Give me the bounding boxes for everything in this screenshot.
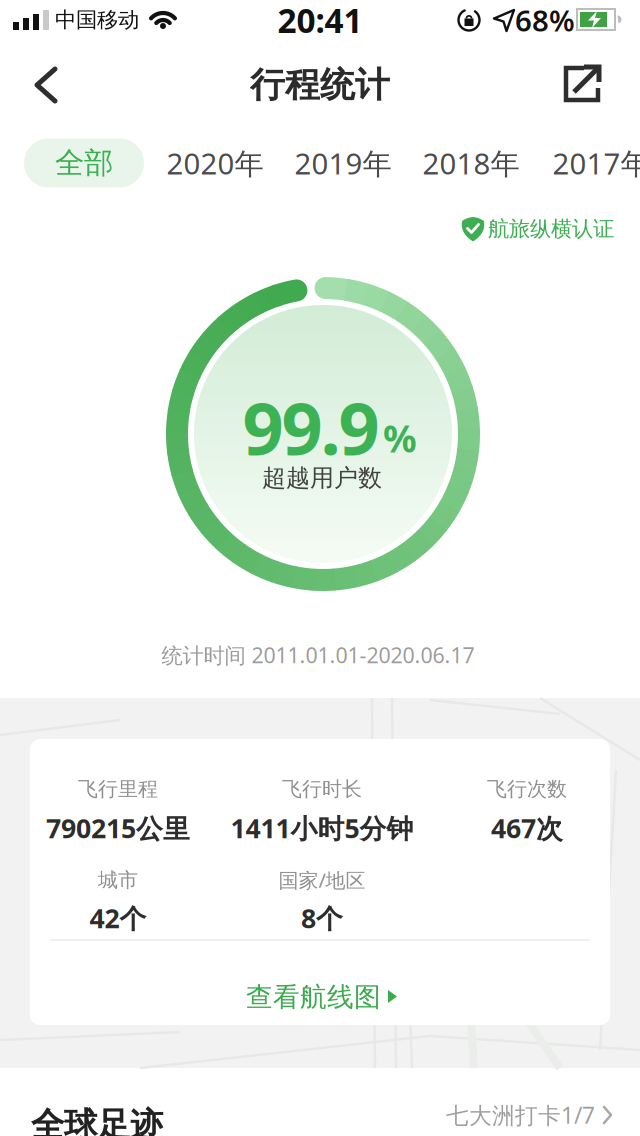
- staticText: 行程统计: [250, 64, 390, 106]
- staticText: 全部: [55, 145, 113, 181]
- staticText: 中国移动: [55, 7, 139, 33]
- staticText: 七大洲打卡1/7: [446, 1100, 595, 1130]
- staticText: 1411小时5分钟: [230, 810, 413, 846]
- staticText: 航旅纵横认证: [488, 216, 614, 242]
- staticText: 8个: [301, 900, 343, 936]
- staticText: 2018年: [422, 143, 519, 182]
- staticText: 飞行次数: [487, 777, 567, 801]
- staticText: 城市: [98, 868, 138, 892]
- staticText: 统计时间 2011.01.01-2020.06.17: [161, 641, 474, 669]
- staticText: 飞行里程: [78, 777, 158, 801]
- button[interactable]: 2020年: [166, 143, 263, 182]
- staticText: 42个: [89, 900, 146, 936]
- staticText: 查看航线图: [246, 981, 381, 1013]
- staticText: 全球足迹: [31, 1104, 163, 1136]
- staticText: %: [383, 413, 417, 463]
- staticText: 超越用户数: [262, 463, 382, 493]
- button[interactable]: 七大洲打卡1/7: [446, 1100, 614, 1130]
- button[interactable]: 查看航线图: [246, 981, 398, 1013]
- staticText: 68%: [515, 0, 575, 39]
- staticText: 2017年: [552, 143, 640, 182]
- staticText: 99.9: [242, 379, 379, 475]
- staticText: 467次: [491, 810, 563, 846]
- staticText: 飞行时长: [282, 777, 362, 801]
- button[interactable]: 2019年: [294, 143, 391, 182]
- button[interactable]: [33, 66, 59, 104]
- button[interactable]: 2018年: [422, 143, 519, 182]
- button[interactable]: [562, 58, 610, 110]
- staticText: 2020年: [166, 143, 263, 182]
- staticText: 20:41: [277, 0, 362, 42]
- button[interactable]: 全部: [24, 138, 144, 187]
- staticText: 790215公里: [46, 810, 190, 846]
- button[interactable]: 2017年: [552, 143, 640, 182]
- staticText: 2019年: [294, 143, 391, 182]
- staticText: 国家/地区: [278, 867, 365, 893]
